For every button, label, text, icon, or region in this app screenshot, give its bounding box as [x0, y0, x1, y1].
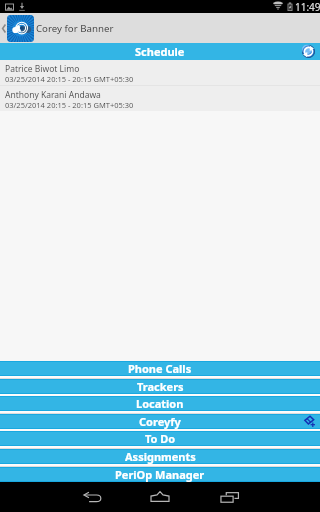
button[interactable]: Assignments: [0, 449, 320, 464]
staticText: 03/25/2014 20:15 - 20:15 GMT+05:30: [5, 74, 134, 84]
staticText: PeriOp Manager: [115, 467, 205, 482]
button[interactable]: Home: [140, 482, 180, 512]
staticText: Assignments: [125, 449, 196, 464]
staticText: Trackers: [137, 379, 184, 394]
staticText: Phone Calls: [128, 361, 192, 376]
staticText: 03/25/2014 20:15 - 20:15 GMT+05:30: [5, 100, 134, 110]
button[interactable]: Location: [0, 396, 320, 411]
button[interactable]: Refresh: [302, 45, 315, 58]
staticText: Coreyfy: [139, 414, 181, 429]
button[interactable]: PeriOp Manager: [0, 467, 320, 482]
button[interactable]: Trackers: [0, 379, 320, 394]
staticText: Anthony Karani Andawa: [5, 89, 101, 101]
other: Add note: [304, 416, 315, 427]
staticText: To Do: [145, 431, 176, 446]
button[interactable]: Coreyfy: [0, 414, 320, 429]
button[interactable]: Anthony Karani Andawa: [0, 86, 320, 111]
button[interactable]: Recent apps: [209, 482, 249, 512]
button[interactable]: Schedule: [0, 43, 320, 60]
button[interactable]: Back: [72, 482, 112, 512]
button[interactable]: Phone Calls: [0, 361, 320, 376]
staticText: 11:49: [295, 0, 320, 13]
staticText: Location: [136, 396, 184, 411]
staticText: Schedule: [135, 44, 185, 59]
staticText: Corey for Banner: [36, 22, 114, 35]
staticText: Patrice Biwot Limo: [5, 63, 80, 75]
button[interactable]: Patrice Biwot Limo: [0, 60, 320, 85]
button[interactable]: [0, 15, 34, 42]
button[interactable]: To Do: [0, 431, 320, 446]
